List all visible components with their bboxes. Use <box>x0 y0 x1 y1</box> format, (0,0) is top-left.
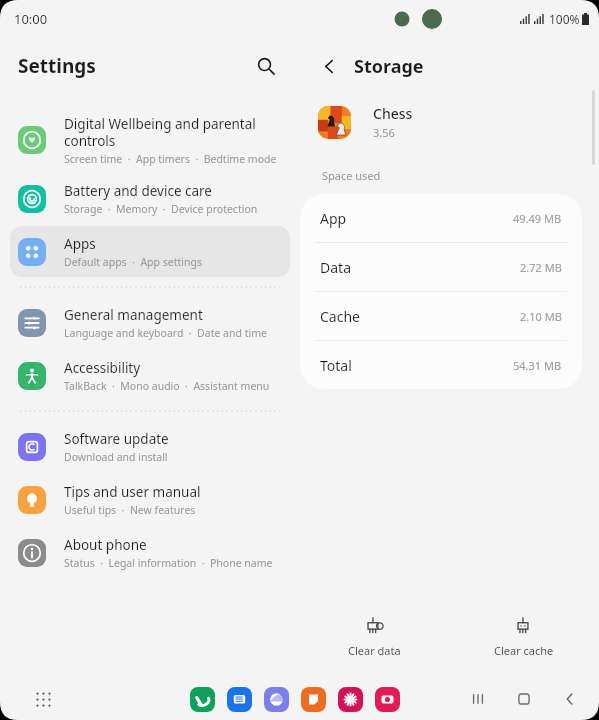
staticText: 54.31 MB <box>513 358 562 373</box>
staticText: Useful tips · New features <box>64 503 196 517</box>
button[interactable]: Back <box>557 686 583 712</box>
staticText: Battery and device care <box>64 182 212 200</box>
button[interactable]: Cache <box>300 292 582 341</box>
button[interactable]: General management <box>10 297 290 348</box>
staticText: Clear cache <box>494 643 554 658</box>
button[interactable]: About phone <box>10 527 290 578</box>
button[interactable]: Battery and device care <box>10 173 290 224</box>
staticText: Default apps · App settings <box>64 255 202 269</box>
staticText: Digital Wellbeing and parental controls <box>64 115 256 150</box>
staticText: 10:00 <box>14 10 48 28</box>
staticText: 100% <box>549 11 580 27</box>
button[interactable]: Digital Wellbeing and parental controls <box>10 109 290 171</box>
button[interactable]: Back <box>312 49 346 83</box>
button[interactable]: Software update <box>10 421 290 472</box>
button[interactable]: Gallery <box>338 687 363 712</box>
staticText: 2.72 MB <box>520 260 562 275</box>
button[interactable]: Apps <box>10 226 290 277</box>
button[interactable]: Clear data <box>300 604 449 670</box>
staticText: Clear data <box>348 643 401 658</box>
staticText: Storage <box>354 54 424 79</box>
staticText: Chess <box>373 104 413 123</box>
button[interactable]: Internet <box>264 687 289 712</box>
button[interactable]: Data <box>300 243 582 292</box>
button[interactable]: Accessibility <box>10 350 290 401</box>
button[interactable]: Tips and user manual <box>10 474 290 525</box>
staticText: App <box>320 209 347 228</box>
staticText: Download and install <box>64 450 168 464</box>
button[interactable]: Notes <box>301 687 326 712</box>
staticText: Status · Legal information · Phone name <box>64 556 273 570</box>
staticText: 3.56 <box>373 125 395 140</box>
staticText: 49.49 MB <box>513 211 562 226</box>
staticText: Language and keyboard · Date and time <box>64 326 267 340</box>
staticText: Screen time · App timers · Bedtime mode <box>64 152 277 166</box>
staticText: About phone <box>64 536 147 554</box>
button[interactable]: Camera <box>375 687 400 712</box>
staticText: General management <box>64 306 203 324</box>
staticText: Storage · Memory · Device protection <box>64 202 258 216</box>
button[interactable]: Search <box>248 48 284 84</box>
staticText: Data <box>320 258 351 277</box>
button[interactable]: Messages <box>227 687 252 712</box>
staticText: Cache <box>320 307 360 326</box>
staticText: 2.10 MB <box>520 309 562 324</box>
staticText: Total <box>320 356 352 375</box>
button[interactable]: Total <box>300 341 582 389</box>
staticText: Space used <box>322 168 381 183</box>
staticText: Apps <box>64 235 96 253</box>
button[interactable]: App <box>300 194 582 243</box>
button[interactable]: Recents <box>465 686 491 712</box>
staticText: TalkBack · Mono audio · Assistant menu <box>64 379 270 393</box>
button[interactable]: Home <box>511 686 537 712</box>
staticText: Settings <box>18 53 96 79</box>
button[interactable]: Apps list <box>28 684 58 714</box>
button[interactable]: Phone <box>190 687 215 712</box>
staticText: Accessibility <box>64 359 141 377</box>
button[interactable]: Clear cache <box>449 604 599 670</box>
staticText: Software update <box>64 430 169 448</box>
staticText: Tips and user manual <box>64 483 201 501</box>
